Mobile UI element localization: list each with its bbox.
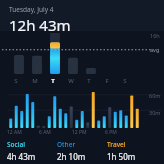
button[interactable]: Social — [7, 140, 57, 164]
staticText: Tuesday, July 4 — [9, 5, 54, 14]
button[interactable]: F — [98, 76, 116, 86]
staticText: 1h 50m — [107, 151, 136, 162]
staticText: 60m — [149, 92, 161, 99]
staticText: 12 PM — [72, 129, 87, 136]
button[interactable]: M — [25, 76, 44, 86]
staticText: avg — [150, 46, 160, 53]
button[interactable]: 60m — [0, 89, 164, 129]
staticText: 16h — [150, 32, 160, 39]
button[interactable]: S — [116, 76, 134, 86]
button[interactable]: 16h — [0, 31, 164, 76]
button[interactable]: Tuesday, July 4 — [0, 0, 164, 31]
staticText: 2h 10m — [57, 151, 86, 162]
staticText: W — [68, 77, 74, 85]
staticText: 12h 43m — [9, 15, 71, 31]
staticText: 6 AM — [39, 129, 51, 136]
button[interactable]: T — [80, 76, 98, 86]
button[interactable]: T — [44, 76, 62, 86]
staticText: F — [105, 77, 109, 85]
staticText: Social — [7, 140, 25, 149]
staticText: 30m — [149, 109, 161, 116]
staticText: 4h 43m — [7, 151, 36, 162]
staticText: S — [123, 77, 127, 85]
button[interactable]: W — [62, 76, 80, 86]
staticText: M — [32, 77, 38, 85]
button[interactable]: S — [6, 76, 25, 86]
staticText: T — [51, 77, 55, 85]
staticText: S — [14, 77, 18, 85]
staticText: Other — [57, 140, 76, 149]
staticText: 12 AM — [7, 129, 22, 136]
staticText: 6 PM — [105, 129, 117, 136]
staticText: T — [87, 77, 91, 85]
button[interactable]: Other — [57, 140, 107, 164]
button[interactable]: Travel — [107, 140, 157, 164]
staticText: Travel — [107, 140, 126, 149]
